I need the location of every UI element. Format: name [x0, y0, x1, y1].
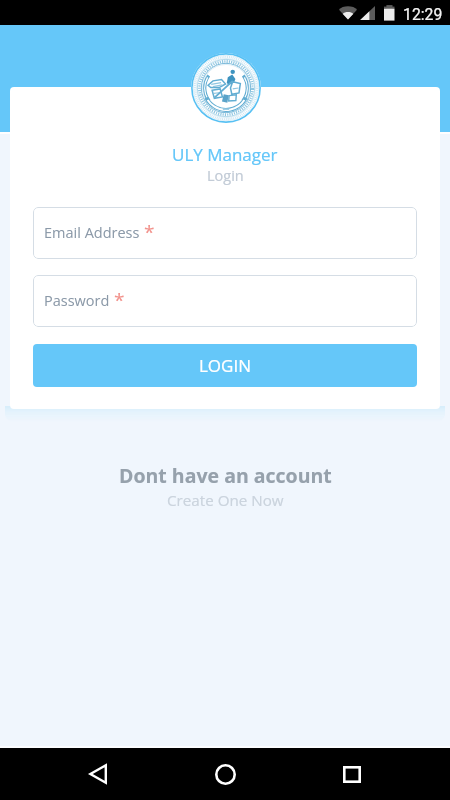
- button[interactable]: Create One Now: [167, 490, 284, 511]
- button[interactable]: Password: [33, 275, 417, 327]
- staticText: *: [144, 219, 155, 245]
- staticText: Login: [207, 166, 244, 186]
- button[interactable]: Email Address: [33, 207, 417, 259]
- button[interactable]: Recent apps: [332, 748, 372, 800]
- staticText: Create One Now: [167, 490, 284, 511]
- button[interactable]: LOGIN: [33, 344, 417, 387]
- staticText: Password: [44, 291, 110, 311]
- staticText: LOGIN: [199, 354, 252, 377]
- staticText: 12:29: [403, 5, 443, 24]
- button[interactable]: Home: [205, 748, 245, 800]
- staticText: *: [114, 287, 125, 313]
- button[interactable]: Back: [78, 748, 118, 800]
- staticText: Dont have an account: [119, 462, 332, 489]
- staticText: Email Address: [44, 223, 140, 243]
- staticText: ULY Manager: [172, 143, 278, 166]
